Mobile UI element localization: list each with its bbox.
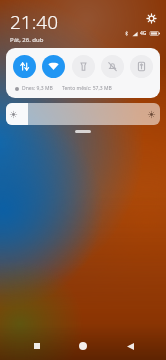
button[interactable]: Silent mode <box>101 55 124 78</box>
staticText: Dnes: 9,3 MB <box>22 85 53 92</box>
button[interactable]: Flashlight <box>72 55 95 78</box>
button[interactable]: Auto rotate <box>130 55 153 78</box>
staticText: 4G <box>140 30 147 37</box>
button[interactable]: Home <box>73 336 93 356</box>
button[interactable]: Wi-Fi <box>42 55 65 78</box>
staticText: Pát, 26. dub <box>10 36 44 44</box>
button[interactable]: Mobile data <box>13 55 36 78</box>
staticText: Tento měsíc: 57,3 MB <box>62 85 112 92</box>
button[interactable]: Recents <box>27 336 47 356</box>
button[interactable]: Back <box>120 336 140 356</box>
button[interactable] <box>75 130 91 133</box>
button[interactable]: Brightness <box>6 103 160 125</box>
staticText: 21:40 <box>10 9 59 35</box>
button[interactable]: Settings <box>145 12 158 25</box>
